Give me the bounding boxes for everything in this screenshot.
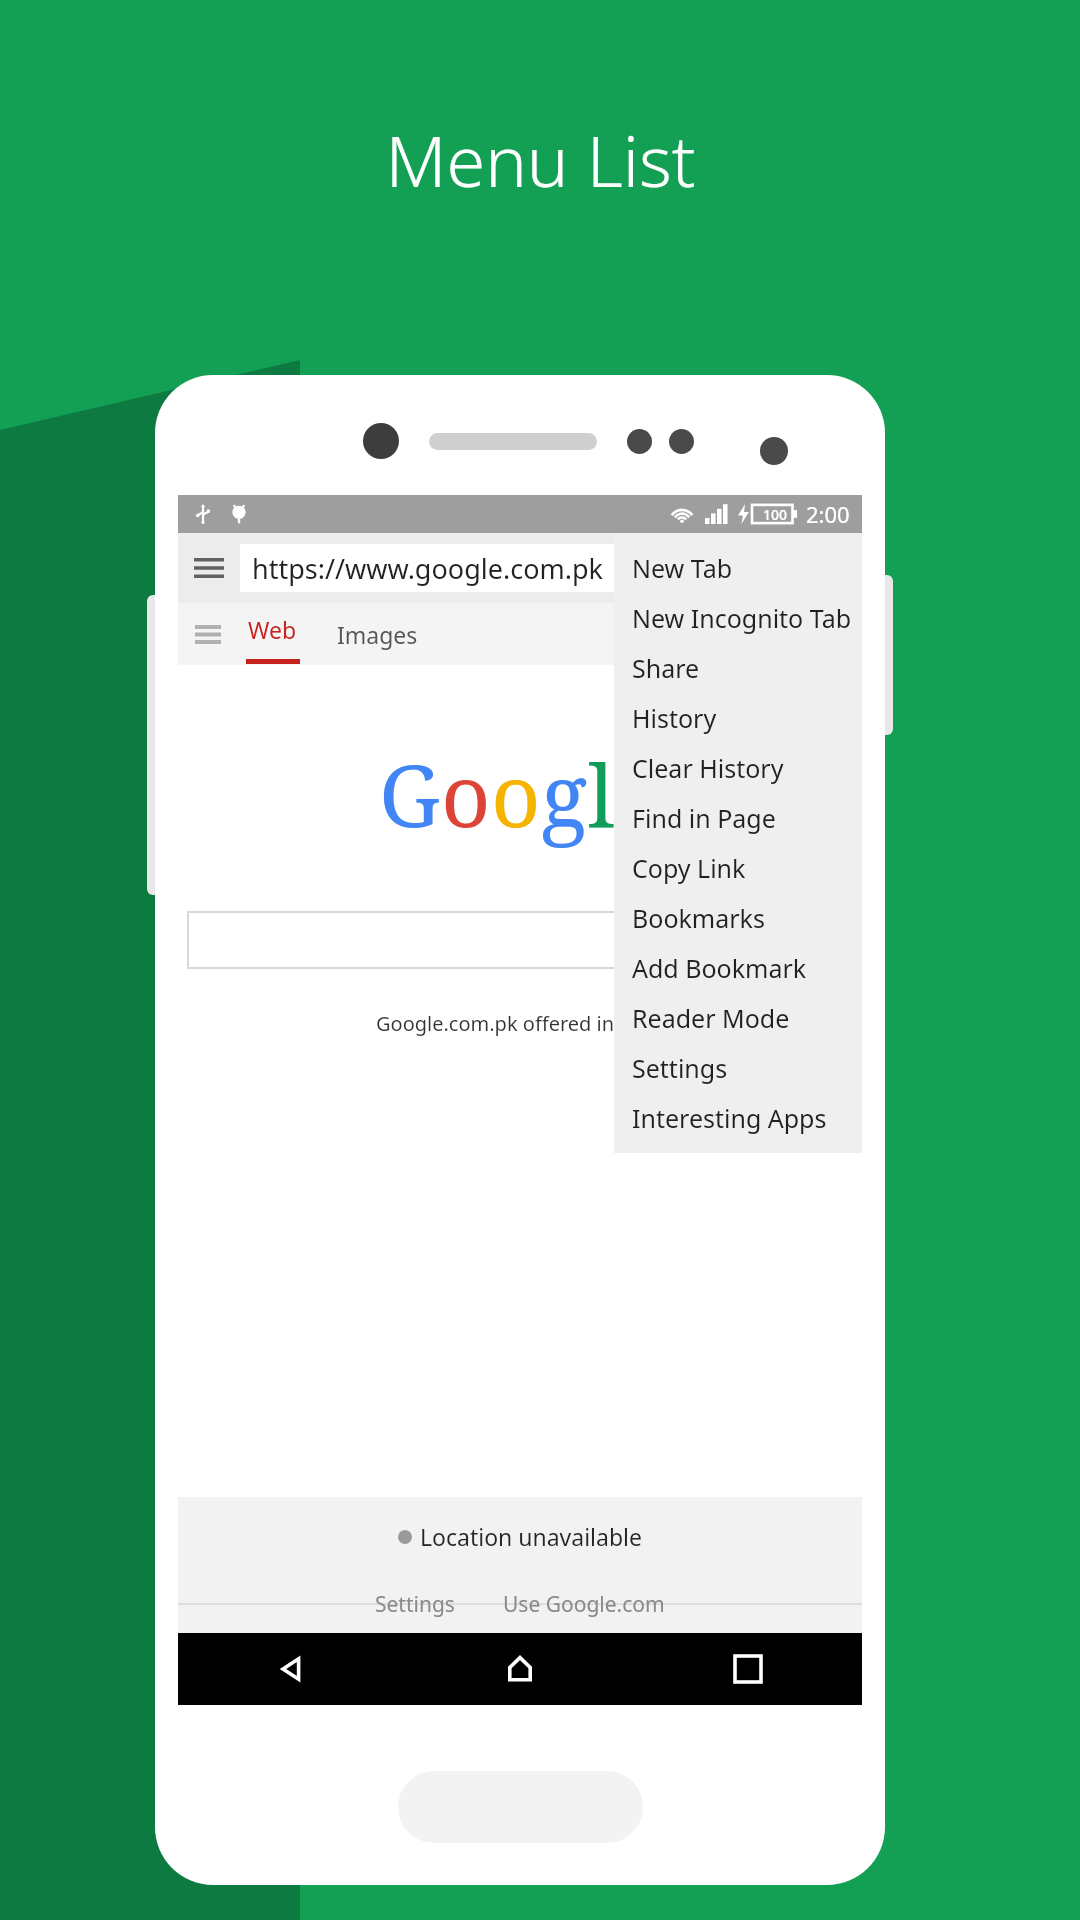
button[interactable]: History (614, 693, 862, 743)
button[interactable]: Apps menu (178, 603, 238, 665)
staticText: l (588, 735, 615, 852)
button[interactable]: Recent apps (634, 1633, 862, 1705)
staticText: Settings (632, 1051, 728, 1085)
staticText: New Tab (632, 551, 733, 585)
staticText: Google.com.pk offered in: (376, 1010, 630, 1037)
button[interactable]: Add Bookmark (614, 943, 862, 993)
staticText: Reader Mode (632, 1001, 790, 1035)
staticText: Share (632, 651, 700, 685)
button[interactable]: Settings (614, 1043, 862, 1093)
staticText: 2:00 (806, 499, 850, 529)
staticText: Bookmarks (632, 901, 765, 935)
staticText: e (615, 735, 662, 852)
button[interactable]: Clear History (614, 743, 862, 793)
staticText: Interesting Apps (632, 1101, 827, 1135)
staticText: o (441, 735, 491, 852)
button[interactable]: Home (406, 1633, 634, 1705)
staticText: o (491, 735, 541, 852)
staticText: Settings (375, 1590, 455, 1619)
staticText: Use Google.com (503, 1590, 665, 1619)
button[interactable]: Back (178, 1633, 406, 1705)
button[interactable]: Web (238, 603, 307, 665)
staticText: Find in Page (632, 801, 776, 835)
button[interactable]: Settings (367, 1584, 463, 1625)
button[interactable]: Use Google.com (495, 1584, 673, 1625)
button[interactable]: Find in Page (614, 793, 862, 843)
staticText: https://www.google.com.pk (252, 550, 603, 587)
button[interactable]: Bookmarks (614, 893, 862, 943)
staticText: History (632, 701, 717, 735)
staticText: Images (337, 619, 418, 650)
button[interactable]: New Incognito Tab (614, 593, 862, 643)
staticText: Copy Link (632, 851, 746, 885)
button[interactable]: Images (331, 603, 424, 665)
staticText: اردو (630, 1012, 664, 1035)
staticText: Location unavailable (420, 1521, 642, 1552)
button[interactable]: Reader Mode (614, 993, 862, 1043)
button[interactable]: Menu (178, 537, 240, 599)
button[interactable]: Interesting Apps (614, 1093, 862, 1143)
staticText: G (379, 735, 441, 852)
button[interactable]: https://www.google.com.pk (240, 544, 846, 592)
button[interactable]: Copy Link (614, 843, 862, 893)
staticText: 100 (763, 505, 788, 524)
staticText: Web (248, 614, 297, 645)
button[interactable]: Share (614, 643, 862, 693)
staticText: Clear History (632, 751, 784, 785)
staticText: New Incognito Tab (632, 601, 852, 635)
staticText: g (541, 735, 588, 852)
staticText: Add Bookmark (632, 951, 807, 985)
staticText: Menu List (385, 112, 696, 207)
button[interactable] (188, 912, 852, 968)
button[interactable]: New Tab (614, 543, 862, 593)
